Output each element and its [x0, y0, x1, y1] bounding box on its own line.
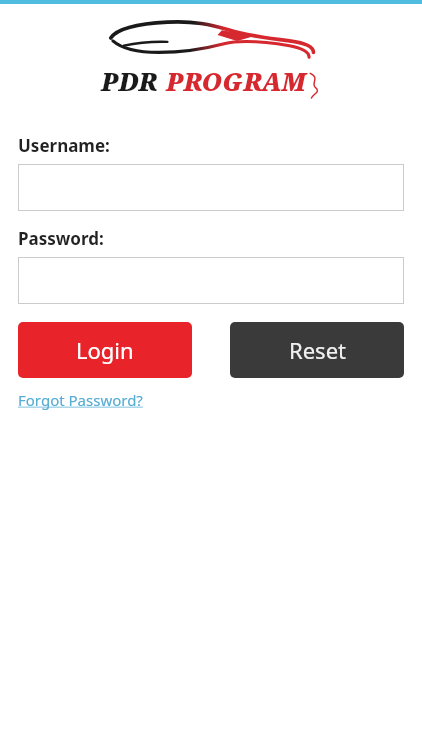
button[interactable]: Forgot Password? [18, 389, 143, 411]
staticText: PDR [101, 64, 157, 98]
staticText: PROGRAM [166, 64, 306, 98]
staticText: Username: [18, 134, 110, 157]
staticText: Reset [289, 335, 346, 365]
button[interactable]: Reset [230, 322, 404, 378]
button[interactable] [18, 164, 404, 211]
button[interactable] [18, 257, 404, 304]
button[interactable]: Login [18, 322, 192, 378]
staticText: Forgot Password? [18, 390, 143, 410]
staticText: Password: [18, 227, 104, 250]
staticText: Login [76, 335, 134, 365]
